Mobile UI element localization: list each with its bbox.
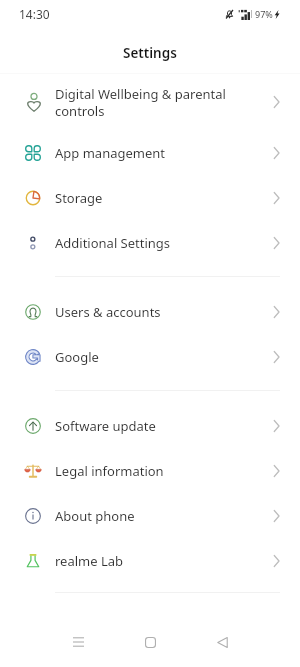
- button[interactable]: Google: [0, 334, 300, 379]
- staticText: Digital Wellbeing & parental controls: [55, 85, 257, 120]
- staticText: Software update: [55, 417, 257, 435]
- staticText: realme Lab: [55, 552, 257, 570]
- staticText: 14:30: [19, 6, 50, 22]
- button[interactable]: Users & accounts: [0, 289, 300, 334]
- button[interactable]: Home: [135, 627, 165, 657]
- button[interactable]: Storage: [0, 175, 300, 220]
- button[interactable]: App management: [0, 130, 300, 175]
- button[interactable]: realme Lab: [0, 538, 300, 583]
- staticText: Storage: [55, 189, 257, 207]
- button[interactable]: Legal information: [0, 448, 300, 493]
- staticText: About phone: [55, 507, 257, 525]
- staticText: Legal information: [55, 462, 257, 480]
- staticText: Settings: [123, 44, 177, 62]
- button[interactable]: Back: [207, 627, 237, 657]
- button[interactable]: Digital Wellbeing & parental controls: [0, 74, 300, 130]
- button[interactable]: Software update: [0, 403, 300, 448]
- staticText: Additional Settings: [55, 234, 257, 252]
- button[interactable]: Recent apps: [63, 627, 93, 657]
- staticText: 97%: [255, 8, 273, 20]
- staticText: Users & accounts: [55, 303, 257, 321]
- staticText: Google: [55, 348, 257, 366]
- staticText: App management: [55, 144, 257, 162]
- button[interactable]: About phone: [0, 493, 300, 538]
- button[interactable]: Additional Settings: [0, 220, 300, 265]
